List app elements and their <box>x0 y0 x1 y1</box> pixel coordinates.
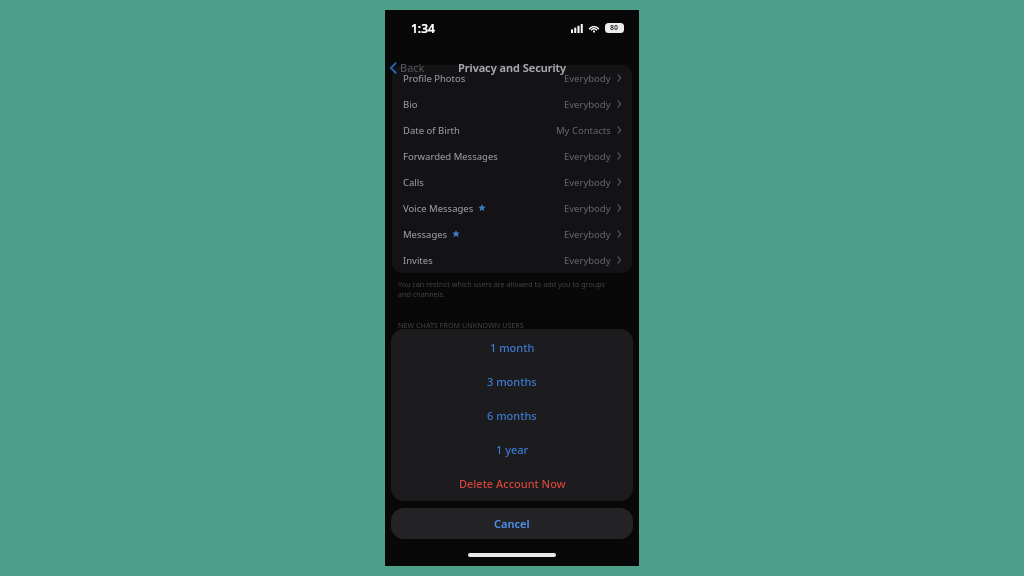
staticText: Cancel <box>494 516 530 531</box>
button[interactable]: Date of Birth <box>392 117 632 143</box>
button[interactable]: 6 months <box>391 398 633 432</box>
staticText: Calls <box>403 176 424 189</box>
staticText: Forwarded Messages <box>403 150 498 163</box>
staticText: Everybody <box>564 98 611 111</box>
button[interactable]: Forwarded Messages <box>392 143 632 169</box>
button[interactable]: Bio <box>392 91 632 117</box>
button[interactable]: Delete Account Now <box>391 466 633 500</box>
staticText: You can restrict which users are allowed… <box>398 279 606 299</box>
staticText: Messages <box>403 228 448 241</box>
button[interactable]: Profile Photos <box>392 65 632 91</box>
button[interactable]: Messages <box>392 221 632 247</box>
staticText: Everybody <box>564 150 611 163</box>
staticText: Bio <box>403 98 418 111</box>
button[interactable]: 3 months <box>391 364 633 398</box>
staticText: My Contacts <box>556 124 611 137</box>
button[interactable]: Calls <box>392 169 632 195</box>
staticText: Everybody <box>564 202 611 215</box>
button[interactable]: 1 year <box>391 432 633 466</box>
staticText: Everybody <box>564 254 611 267</box>
staticText: 1 year <box>496 442 529 457</box>
staticText: Voice Messages <box>403 202 474 215</box>
staticText: Everybody <box>564 72 611 85</box>
button[interactable]: Archive and Mute <box>392 336 632 362</box>
staticText: Privacy and Security <box>458 60 567 75</box>
staticText: Profile Photos <box>403 72 466 85</box>
other: Home indicator <box>468 553 556 557</box>
button[interactable]: Cancel <box>391 508 633 539</box>
button[interactable]: Back <box>385 56 433 79</box>
staticText: 1:34 <box>411 20 435 36</box>
staticText: 6 months <box>487 408 537 423</box>
staticText: 80 <box>610 23 619 33</box>
button[interactable]: 1 month <box>391 330 633 364</box>
button[interactable]: Invites <box>392 247 632 273</box>
staticText: 1 month <box>490 340 535 355</box>
staticText: Invites <box>403 254 433 267</box>
staticText: Everybody <box>564 176 611 189</box>
button[interactable]: Voice Messages <box>392 195 632 221</box>
staticText: Delete Account Now <box>459 476 566 491</box>
staticText: 3 months <box>487 374 537 389</box>
staticText: Date of Birth <box>403 124 460 137</box>
staticText: NEW CHATS FROM UNKNOWN USERS <box>398 320 524 330</box>
staticText: Everybody <box>564 228 611 241</box>
staticText: Back <box>400 60 425 75</box>
